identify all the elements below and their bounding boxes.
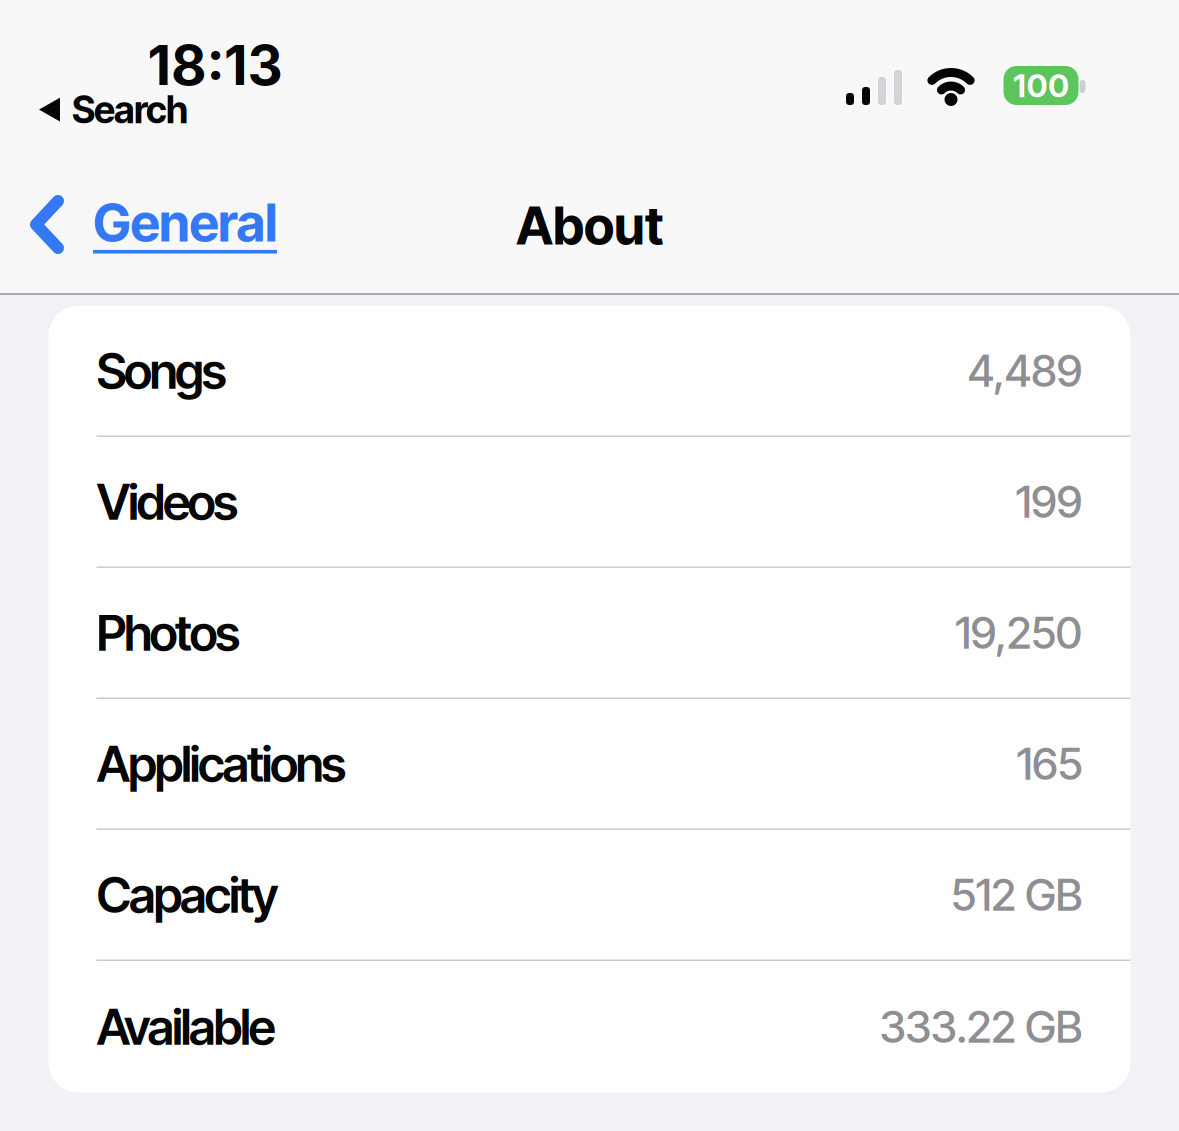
staticText: Applications [96,734,346,794]
staticText: 165 [1016,737,1082,790]
staticText: 199 [1015,475,1082,528]
staticText: 100 [1013,66,1069,105]
staticText: General [93,191,277,254]
button[interactable]: Back to General [0,155,220,218]
staticText: Songs [96,341,226,401]
staticText: Capacity [96,865,279,925]
staticText: 4,489 [967,344,1082,397]
staticText: 512 GB [951,868,1082,921]
staticText: Search [72,87,188,132]
staticText: 333.22 GB [879,1000,1082,1053]
staticText: Photos [96,603,240,663]
staticText: Videos [96,472,238,532]
staticText: About [516,194,663,257]
staticText: 18:13 [147,32,282,98]
staticText: Available [96,997,275,1057]
staticText: 19,250 [955,606,1082,659]
